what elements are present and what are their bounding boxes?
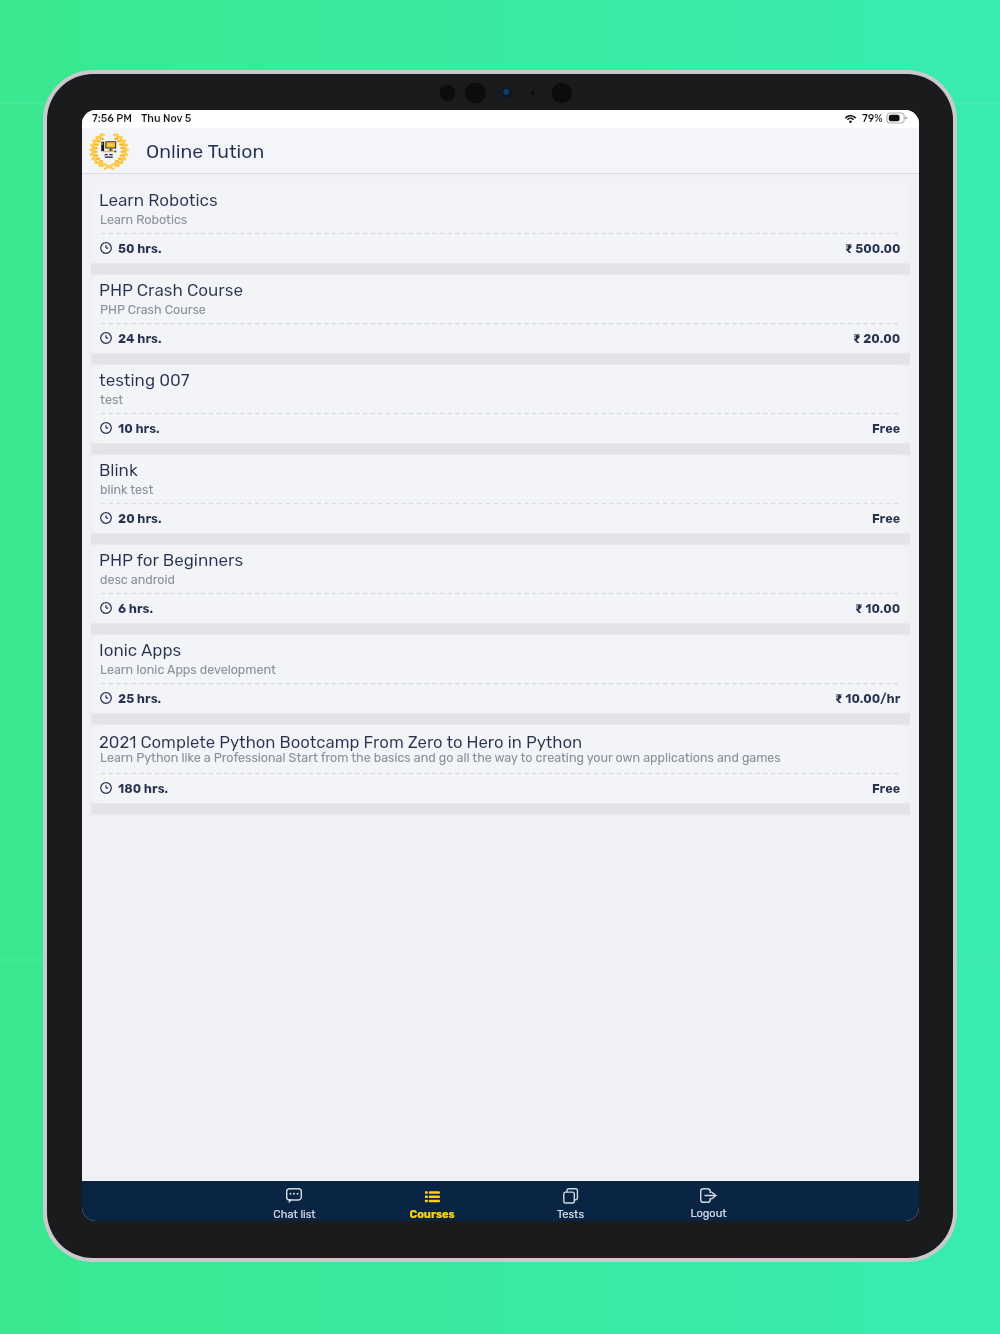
- button[interactable]: Logout: [639, 1181, 777, 1221]
- button[interactable]: Tests: [501, 1181, 639, 1221]
- staticText: PHP Crash Course: [99, 280, 243, 300]
- button[interactable]: Learn Robotics: [93, 185, 908, 263]
- staticText: 2021 Complete Python Bootcamp From Zero …: [99, 732, 583, 752]
- staticText: desc android: [100, 572, 175, 587]
- button[interactable]: PHP for Beginners: [93, 545, 908, 623]
- staticText: ₹ 10.00/hr: [835, 691, 901, 706]
- staticText: Free: [872, 511, 901, 526]
- staticText: Learn Ionic Apps development: [100, 662, 276, 677]
- staticText: Ionic Apps: [99, 640, 182, 660]
- staticText: Free: [872, 421, 901, 436]
- staticText: Learn Robotics: [100, 212, 188, 227]
- staticText: 180 hrs.: [118, 781, 169, 796]
- button[interactable]: PHP Crash Course: [93, 275, 908, 353]
- staticText: 20 hrs.: [118, 511, 162, 526]
- button[interactable]: 2021 Complete Python Bootcamp From Zero …: [93, 725, 908, 803]
- button[interactable]: Blink: [93, 455, 908, 533]
- staticText: 6 hrs.: [118, 601, 154, 616]
- staticText: PHP Crash Course: [100, 302, 206, 317]
- staticText: Chat list: [273, 1208, 316, 1221]
- staticText: 7:56 PM: [92, 112, 132, 125]
- staticText: Learn Python like a Professional Start f…: [100, 750, 781, 765]
- button[interactable]: Ionic Apps: [93, 635, 908, 713]
- staticText: blink test: [100, 482, 154, 497]
- staticText: ₹ 10.00: [855, 601, 901, 616]
- staticText: ₹ 500.00: [845, 241, 901, 256]
- button[interactable]: testing 007: [93, 365, 908, 443]
- staticText: Blink: [99, 460, 138, 480]
- staticText: test: [100, 392, 124, 407]
- staticText: Learn Robotics: [99, 190, 218, 210]
- staticText: ₹ 20.00: [853, 331, 901, 346]
- staticText: Logout: [690, 1207, 727, 1220]
- staticText: 50 hrs.: [118, 241, 162, 256]
- staticText: testing 007: [99, 370, 190, 390]
- staticText: 25 hrs.: [118, 691, 162, 706]
- button[interactable]: Chat list: [225, 1181, 363, 1221]
- button[interactable]: Courses: [363, 1181, 501, 1221]
- staticText: 10 hrs.: [118, 421, 160, 436]
- staticText: Tests: [557, 1208, 584, 1221]
- staticText: 24 hrs.: [118, 331, 162, 346]
- staticText: Thu Nov 5: [141, 112, 192, 125]
- staticText: Courses: [409, 1208, 455, 1221]
- staticText: Online Tution: [146, 140, 265, 163]
- staticText: Free: [872, 781, 901, 796]
- staticText: 79%: [862, 112, 883, 125]
- staticText: PHP for Beginners: [99, 550, 244, 570]
